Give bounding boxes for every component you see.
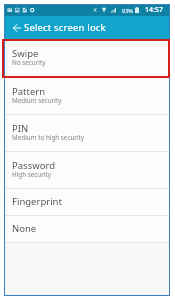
staticText: Medium security	[12, 96, 62, 105]
button[interactable]: Swipe	[4, 39, 170, 77]
staticText: Fingerprint	[12, 195, 62, 208]
staticText: Select screen lock	[24, 21, 106, 34]
button[interactable]: Pattern	[4, 78, 170, 114]
button[interactable]: None	[4, 216, 170, 242]
staticText: None	[12, 222, 37, 235]
button[interactable]: Fingerprint	[4, 189, 170, 215]
staticText: Password	[12, 159, 55, 172]
staticText: High security	[12, 170, 51, 179]
button[interactable]: Password	[4, 152, 170, 188]
staticText: No security	[12, 58, 46, 67]
staticText: 14:57	[145, 5, 163, 15]
staticText: Pattern	[12, 85, 46, 98]
staticText: 93%	[122, 7, 133, 14]
staticText: PIN	[12, 122, 29, 135]
staticText: Medium to high security	[12, 133, 85, 142]
button[interactable]: PIN	[4, 115, 170, 151]
button[interactable]: Navigate up	[4, 16, 23, 39]
staticText: Swipe	[12, 47, 39, 60]
